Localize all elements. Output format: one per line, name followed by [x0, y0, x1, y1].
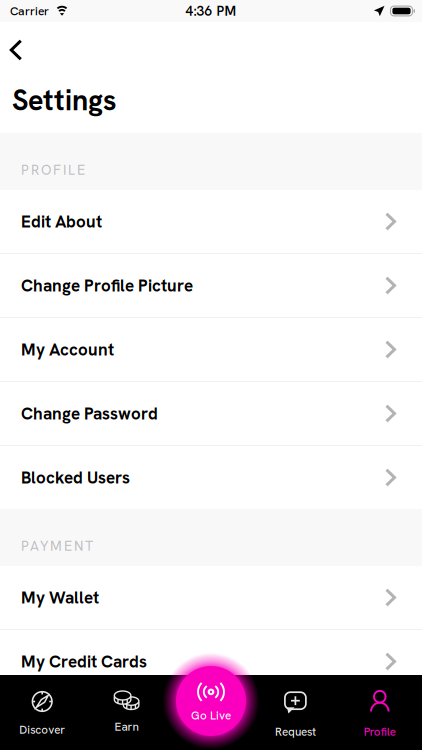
staticText: PROFILE: [21, 161, 85, 179]
button[interactable]: Edit About: [0, 190, 422, 253]
button[interactable]: Go Live: [163, 653, 259, 749]
button[interactable]: My Credit Cards: [0, 630, 422, 693]
button[interactable]: Request: [253, 675, 338, 750]
staticText: Blocked Users: [21, 466, 130, 489]
button[interactable]: Profile: [338, 675, 422, 750]
staticText: Carrier: [10, 3, 49, 19]
staticText: PAYMENT: [21, 537, 93, 555]
staticText: Change Password: [21, 402, 158, 425]
staticText: My Account: [21, 338, 114, 361]
staticText: My Credit Cards: [21, 650, 147, 673]
staticText: Earn: [115, 719, 139, 734]
button[interactable]: Change Profile Picture: [0, 254, 422, 317]
button[interactable]: Change Password: [0, 382, 422, 445]
button[interactable]: My Account: [0, 318, 422, 381]
staticText: Request: [275, 724, 316, 739]
staticText: My Wallet: [21, 586, 99, 609]
staticText: Go Live: [191, 708, 231, 723]
button[interactable]: My Wallet: [0, 566, 422, 629]
staticText: Discover: [19, 722, 65, 737]
staticText: Settings: [12, 82, 117, 119]
staticText: Change Profile Picture: [21, 274, 193, 297]
button[interactable]: Earn: [84, 675, 169, 750]
staticText: 4:36 PM: [185, 2, 236, 20]
button[interactable]: Blocked Users: [0, 446, 422, 509]
staticText: Edit About: [21, 210, 102, 233]
button[interactable]: Back: [0, 30, 32, 70]
button[interactable]: Discover: [0, 675, 84, 750]
staticText: Profile: [364, 724, 396, 739]
